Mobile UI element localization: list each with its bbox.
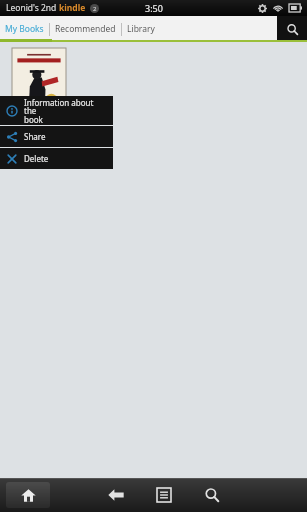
staticText: 2 [93,5,97,13]
staticText: Delete [24,153,49,164]
staticText: 3:50 [145,2,163,14]
staticText: Recommended [55,23,116,35]
other: Settings [258,4,267,13]
other: Battery [289,4,302,12]
button[interactable]: Recommended [50,16,121,42]
button[interactable]: Home [6,482,50,508]
button[interactable]: Menu [151,482,177,508]
button[interactable]: Share [0,126,113,147]
button[interactable]: Library [122,16,160,42]
staticText: Share [24,131,46,142]
button[interactable] [12,48,66,122]
staticText: My Books [5,23,44,35]
button[interactable]: Information about the book [0,96,113,125]
button[interactable]: Search [277,16,307,42]
staticText: Library [127,23,155,35]
button[interactable]: Delete [0,148,113,169]
staticText: Treasure Island [12,125,67,135]
staticText: kindle [59,2,86,14]
other: Wi-Fi [273,3,283,13]
staticText: Information about the book [24,97,107,125]
button[interactable]: Back [103,482,129,508]
staticText: Leonid's 2nd [6,2,59,14]
button[interactable]: Search [199,482,225,508]
button[interactable]: My Books [0,16,49,42]
